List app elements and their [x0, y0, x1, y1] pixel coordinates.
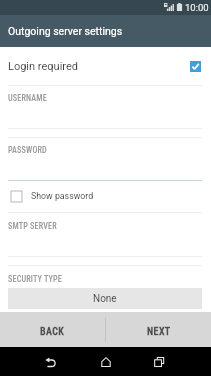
staticText: PASSWORD: [8, 145, 47, 155]
staticText: Outgoing server settings: [8, 25, 123, 37]
button[interactable]: Home: [91, 347, 120, 376]
staticText: 10:00: [185, 2, 209, 13]
staticText: Show password: [31, 191, 94, 201]
staticText: BACK: [40, 326, 65, 338]
button[interactable]: None: [8, 288, 202, 309]
button[interactable]: Recent apps: [145, 347, 174, 376]
staticText: NEXT: [147, 326, 171, 338]
staticText: USERNAME: [8, 93, 47, 103]
staticText: Login required: [8, 60, 208, 73]
staticText: None: [93, 293, 117, 305]
button[interactable]: Show password: [0, 180, 211, 212]
button[interactable]: Login required: [0, 47, 211, 85]
staticText: SMTP SERVER: [8, 221, 57, 231]
button[interactable]: Back: [36, 347, 65, 376]
button[interactable]: BACK: [0, 312, 105, 347]
button[interactable]: NEXT: [106, 312, 211, 347]
staticText: SECURITY TYPE: [8, 274, 63, 284]
